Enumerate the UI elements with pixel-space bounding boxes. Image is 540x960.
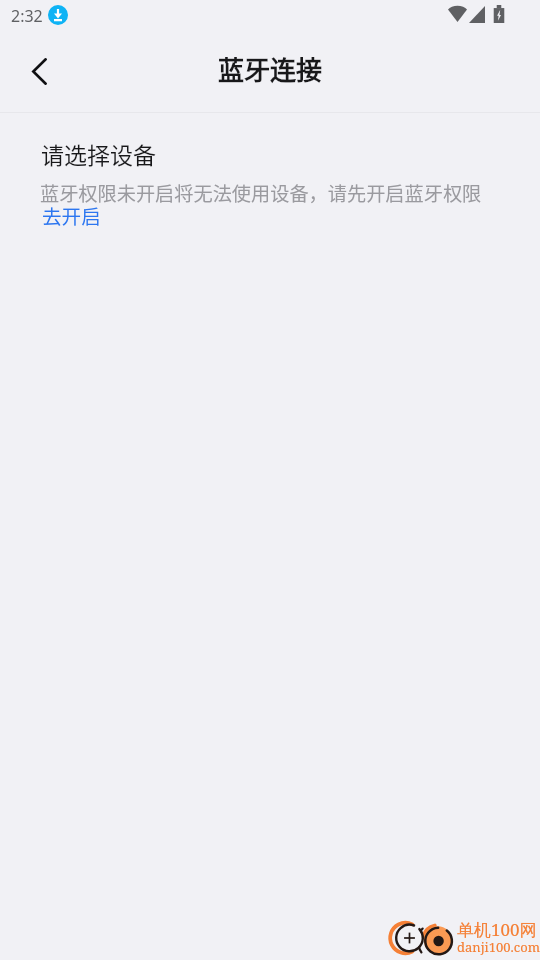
staticText: danji100.com: [457, 938, 540, 956]
staticText: 蓝牙权限未开启将无法使用设备，请先开启蓝牙权限: [40, 179, 482, 207]
staticText: 请选择设备: [41, 137, 156, 170]
staticText: 蓝牙连接: [218, 50, 323, 88]
staticText: 去开启: [42, 201, 101, 229]
button[interactable]: 去开启: [42, 200, 104, 228]
staticText: 2:32: [11, 5, 43, 27]
staticText: 单机100网: [457, 918, 537, 941]
button[interactable]: Back: [14, 46, 64, 96]
other: Download: [48, 5, 68, 25]
